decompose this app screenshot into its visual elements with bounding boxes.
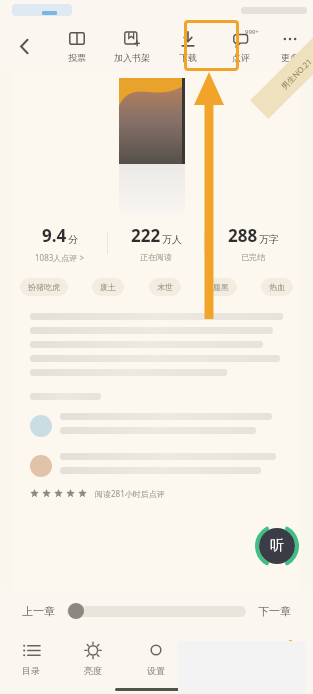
button[interactable]: 热血: [261, 278, 293, 296]
button[interactable]: [67, 606, 246, 617]
button[interactable]: 设置: [124, 632, 187, 684]
staticText: 亮度: [84, 665, 102, 676]
button[interactable]: 下一章: [254, 600, 295, 622]
staticText: 万人: [162, 233, 182, 246]
staticText: 热血: [269, 282, 285, 292]
staticText: 9.4: [42, 224, 67, 247]
staticText: 听: [270, 537, 284, 555]
staticText: 投票: [68, 52, 86, 63]
button[interactable]: 加入书架: [104, 20, 160, 72]
staticText: 分: [68, 233, 78, 246]
staticText: 更多: [281, 52, 299, 63]
staticText: 废土: [100, 282, 116, 292]
button[interactable]: 扮猪吃虎: [20, 278, 68, 296]
staticText: 上一章: [22, 604, 55, 618]
button[interactable]: 更多: [267, 20, 313, 72]
staticText: 正在阅读: [140, 252, 172, 262]
button[interactable]: 废土: [92, 278, 124, 296]
staticText: 下载: [179, 52, 197, 63]
staticText: 设置: [147, 665, 165, 676]
button[interactable]: Listen: [259, 528, 295, 564]
staticText: 点评: [232, 52, 250, 63]
staticText: 目录: [22, 665, 40, 676]
staticText: 末世: [157, 282, 173, 292]
button[interactable]: 亮度: [62, 632, 124, 684]
button[interactable]: 上一章: [18, 600, 59, 622]
staticText: 扮猪吃虎: [28, 282, 60, 292]
staticText: 288: [228, 224, 258, 247]
staticText: 阅读281小时后点评: [95, 488, 165, 499]
staticText: 腹黑: [213, 282, 229, 292]
staticText: 999+: [245, 28, 259, 36]
button[interactable]: 末世: [149, 278, 181, 296]
staticText: 男生NO.21: [278, 55, 313, 91]
button[interactable]: 目录: [0, 632, 62, 684]
button[interactable]: Back: [6, 20, 42, 72]
button[interactable]: 更多: [250, 632, 313, 684]
staticText: 222: [131, 224, 161, 247]
staticText: 1083人点评 >: [35, 252, 84, 263]
staticText: 下一章: [258, 604, 291, 618]
staticText: 已完结: [241, 252, 265, 262]
button[interactable]: 288: [205, 224, 301, 262]
staticText: 万字: [259, 233, 279, 246]
button[interactable]: 222: [108, 224, 204, 262]
button[interactable]: 投票: [49, 20, 104, 72]
button[interactable]: 999+: [215, 20, 267, 72]
button[interactable]: 下载: [160, 20, 215, 72]
button[interactable]: 9.4: [12, 224, 107, 263]
staticText: 加入书架: [114, 52, 150, 63]
button[interactable]: 听书: [187, 632, 250, 684]
button[interactable]: 腹黑: [205, 278, 237, 296]
